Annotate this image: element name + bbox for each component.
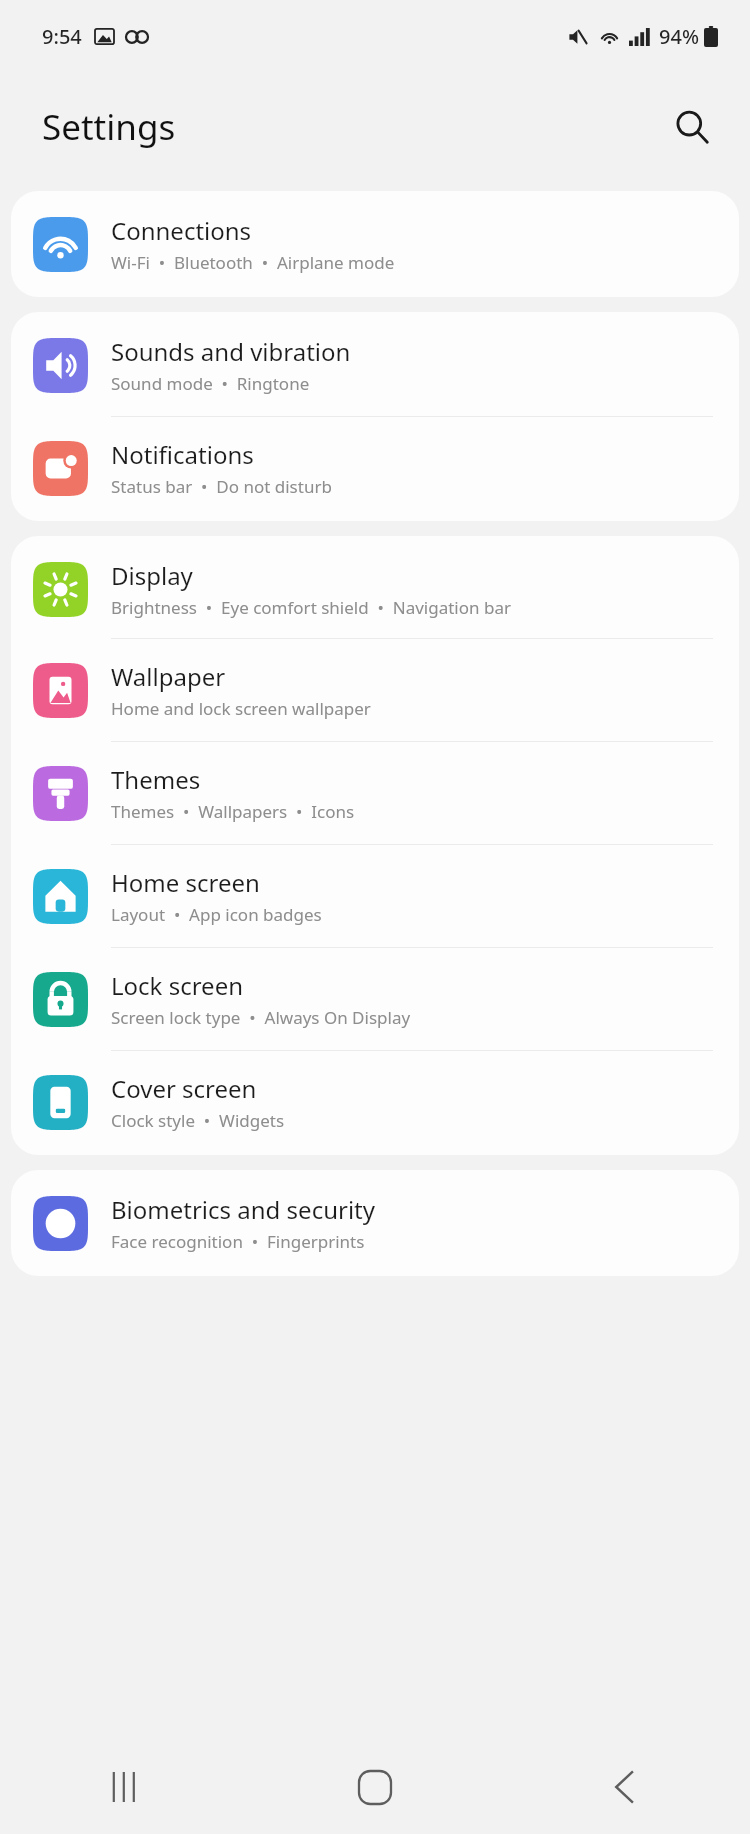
staticText: Wi-Fi • Bluetooth • Airplane mode bbox=[111, 251, 395, 274]
staticText: Cover screen bbox=[111, 1072, 257, 1105]
staticText: Screen lock type • Always On Display bbox=[111, 1006, 411, 1029]
button[interactable]: Connections bbox=[11, 191, 739, 297]
button[interactable]: Cover screen bbox=[11, 1051, 739, 1155]
staticText: Themes bbox=[111, 763, 201, 796]
staticText: Biometrics and security bbox=[111, 1193, 375, 1226]
button[interactable]: Lock screen bbox=[11, 948, 739, 1050]
staticText: Layout • App icon badges bbox=[111, 903, 322, 926]
button[interactable]: Wallpaper bbox=[11, 639, 739, 741]
button[interactable]: Display bbox=[11, 536, 739, 638]
staticText: 94% bbox=[659, 23, 699, 50]
staticText: Home screen bbox=[111, 866, 260, 899]
staticText: Face recognition • Fingerprints bbox=[111, 1230, 365, 1253]
staticText: Brightness • Eye comfort shield • Naviga… bbox=[111, 596, 511, 619]
staticText: Lock screen bbox=[111, 969, 244, 1002]
button[interactable]: Home bbox=[250, 1740, 500, 1834]
staticText: Clock style • Widgets bbox=[111, 1109, 285, 1132]
staticText: Status bar • Do not disturb bbox=[111, 475, 332, 498]
staticText: Sound mode • Ringtone bbox=[111, 372, 310, 395]
staticText: Settings bbox=[42, 103, 176, 151]
button[interactable]: Notifications bbox=[11, 417, 739, 521]
staticText: Connections bbox=[111, 214, 252, 247]
staticText: Sounds and vibration bbox=[111, 335, 351, 368]
staticText: Themes • Wallpapers • Icons bbox=[111, 800, 355, 823]
button[interactable]: Sounds and vibration bbox=[11, 312, 739, 416]
staticText: Notifications bbox=[111, 438, 254, 471]
button[interactable]: Back bbox=[500, 1740, 750, 1834]
staticText: Wallpaper bbox=[111, 660, 226, 693]
staticText: Home and lock screen wallpaper bbox=[111, 697, 371, 720]
button[interactable]: Themes bbox=[11, 742, 739, 844]
staticText: Display bbox=[111, 559, 193, 592]
staticText: 9:54 bbox=[42, 23, 82, 50]
button[interactable]: Recents bbox=[0, 1740, 250, 1834]
button[interactable]: Search bbox=[662, 97, 722, 157]
button[interactable]: Home screen bbox=[11, 845, 739, 947]
button[interactable]: Biometrics and security bbox=[11, 1170, 739, 1276]
